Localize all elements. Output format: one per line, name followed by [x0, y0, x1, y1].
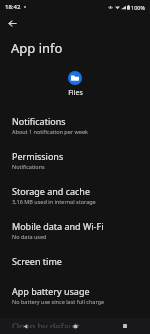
button[interactable]: Permissions [0, 144, 150, 176]
staticText: No battery use since last full charge [12, 298, 105, 305]
button[interactable]: Recent apps [100, 318, 150, 334]
staticText: About 1 notification per week [12, 128, 88, 135]
staticText: Storage and cache [12, 185, 90, 197]
staticText: Notifications [12, 115, 66, 127]
button[interactable]: Mobile data and Wi-Fi [0, 214, 150, 246]
staticText: Notifications [12, 163, 45, 170]
staticText: Permissions [12, 150, 64, 162]
staticText: 18:42 [5, 3, 21, 11]
staticText: Open by default [12, 320, 80, 328]
button[interactable]: Storage and cache [0, 179, 150, 211]
button[interactable]: App battery usage [0, 279, 150, 311]
staticText: 3,16 MB used in internal storage [12, 198, 96, 205]
staticText: App info [11, 39, 63, 57]
staticText: No data used [12, 233, 47, 240]
button[interactable]: Home [50, 318, 100, 334]
staticText: App battery usage [12, 285, 90, 297]
button[interactable]: Screen time [0, 249, 150, 273]
staticText: Mobile data and Wi-Fi [12, 220, 104, 232]
staticText: Files [68, 88, 83, 98]
button[interactable]: Back [0, 318, 50, 334]
button[interactable]: Notifications [0, 109, 150, 141]
staticText: 100% [131, 4, 146, 11]
staticText: Screen time [12, 255, 62, 267]
button[interactable]: Open by default [0, 314, 150, 334]
button[interactable]: Back [3, 14, 21, 32]
